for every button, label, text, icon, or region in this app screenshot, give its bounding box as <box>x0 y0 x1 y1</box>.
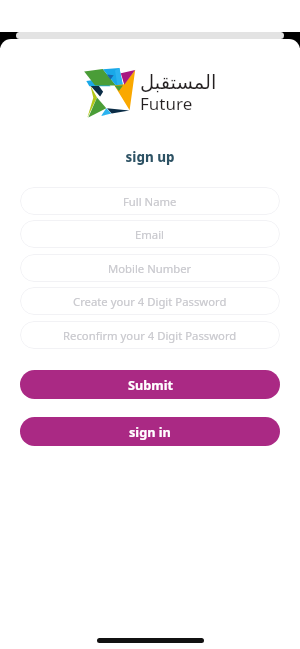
button[interactable]: Create your 4 Digit Password <box>20 287 280 315</box>
button[interactable]: Submit <box>20 370 280 399</box>
staticText: Reconfirm your 4 Digit Password <box>63 328 237 343</box>
button[interactable]: Email <box>20 220 280 248</box>
staticText: Future <box>140 92 193 115</box>
staticText: Create your 4 Digit Password <box>73 294 227 309</box>
staticText: Submit <box>128 376 173 393</box>
staticText: المستقبل <box>140 71 217 94</box>
button[interactable]: Reconfirm your 4 Digit Password <box>20 321 280 349</box>
button[interactable]: Full Name <box>20 187 280 215</box>
staticText: Email <box>135 227 165 242</box>
button[interactable]: sign in <box>20 417 280 446</box>
staticText: sign in <box>129 423 171 440</box>
button[interactable]: Mobile Number <box>20 254 280 282</box>
staticText: Full Name <box>123 194 177 209</box>
staticText: sign up <box>0 148 300 166</box>
staticText: Mobile Number <box>108 261 192 276</box>
